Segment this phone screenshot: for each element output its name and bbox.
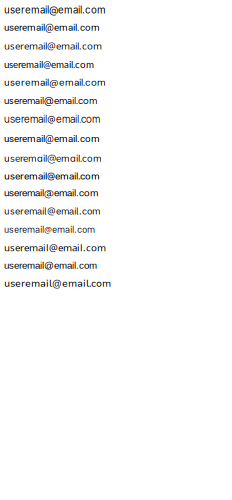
staticText: useremail@email.com: [4, 58, 94, 70]
staticText: useremail@email.com: [4, 95, 97, 106]
staticText: useremail@email.com: [4, 170, 100, 182]
staticText: useremail@email.com: [4, 204, 100, 217]
staticText: useremail@email.com: [4, 4, 106, 16]
staticText: useremail@email.com: [4, 132, 100, 146]
staticText: useremail@email.com: [4, 22, 100, 33]
staticText: useremail@email.com: [4, 223, 95, 235]
staticText: useremail@email.com: [4, 241, 106, 254]
staticText: useremail@email.com: [4, 76, 106, 89]
staticText: useremail@email.com: [4, 260, 97, 271]
staticText: useremail@email.com: [4, 152, 102, 164]
staticText: useremail@email.com: [4, 188, 98, 198]
staticText: useremail@email.com: [4, 39, 102, 52]
staticText: useremail@email.com: [4, 112, 100, 126]
staticText: useremail@email.com: [4, 277, 111, 290]
